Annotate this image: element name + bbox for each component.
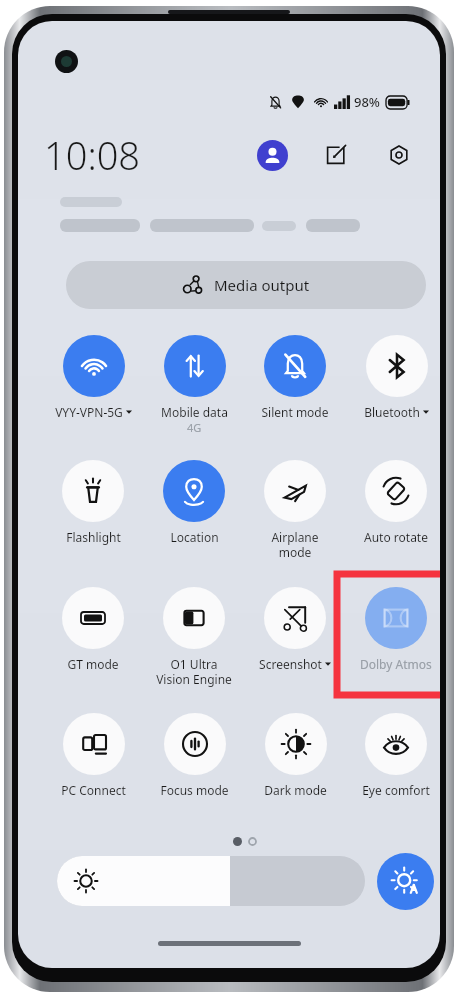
button[interactable]: Screenshot [245, 587, 345, 692]
button[interactable]: Silent mode [245, 335, 345, 440]
button[interactable]: Settings [384, 140, 414, 170]
staticText: Flashlight [66, 529, 121, 545]
staticText: Eye comfort [362, 782, 430, 798]
staticText: VYY-VPN-5G [55, 404, 123, 420]
button[interactable] [57, 856, 365, 906]
staticText: O1 Ultra Vision Engine [156, 656, 232, 687]
staticText: Screenshot [259, 656, 322, 672]
button[interactable]: Airplane mode [245, 460, 345, 565]
staticText: GT mode [67, 656, 119, 672]
button[interactable]: Auto brightness [377, 853, 434, 910]
button[interactable]: PC Connect [43, 713, 143, 818]
button[interactable]: Auto rotate [346, 460, 440, 565]
button[interactable]: Bluetooth [346, 335, 440, 440]
button[interactable]: Mobile data [144, 335, 244, 440]
staticText: Location [170, 529, 219, 545]
button[interactable]: User profile [257, 140, 288, 171]
staticText: 4G [187, 420, 202, 435]
button[interactable]: Eye comfort [346, 713, 440, 818]
staticText: Dark mode [264, 782, 327, 798]
staticText: PC Connect [61, 782, 126, 798]
button[interactable]: O1 Ultra Vision Engine [144, 587, 244, 692]
button[interactable]: GT mode [43, 587, 143, 692]
staticText: Focus mode [160, 782, 229, 798]
staticText: 10:08 [44, 129, 141, 181]
staticText: Media output [214, 275, 310, 295]
staticText: Dolby Atmos [360, 656, 432, 672]
staticText: Bluetooth [364, 404, 420, 420]
button[interactable]: Media output [66, 261, 426, 309]
button[interactable]: Location [144, 460, 244, 565]
button[interactable]: Dolby Atmos [346, 587, 440, 692]
button[interactable]: Dark mode [245, 713, 345, 818]
staticText: Airplane mode [271, 529, 319, 560]
staticText: Mobile data [161, 404, 228, 420]
button[interactable]: Focus mode [144, 713, 244, 818]
staticText: Silent mode [261, 404, 329, 420]
button[interactable]: Edit quick settings [321, 140, 351, 170]
button[interactable]: VYY-VPN-5G [43, 335, 143, 440]
staticText: 98% [354, 93, 380, 111]
button[interactable]: Flashlight [43, 460, 143, 565]
staticText: Auto rotate [364, 529, 428, 545]
